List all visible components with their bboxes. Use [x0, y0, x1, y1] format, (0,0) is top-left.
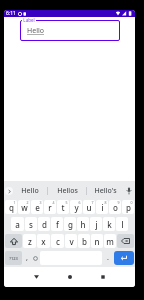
button[interactable]	[5, 234, 22, 248]
button[interactable]: Hello's	[87, 181, 124, 200]
button[interactable]: z	[23, 234, 36, 248]
button[interactable]: Hello	[13, 181, 47, 200]
staticText: ,	[26, 253, 28, 263]
button[interactable]: .	[103, 251, 113, 265]
staticText: z	[28, 236, 32, 247]
staticText: ?123	[9, 256, 18, 261]
button[interactable]: c	[51, 234, 64, 248]
staticText: q	[9, 202, 14, 213]
staticText: u	[86, 202, 92, 213]
button[interactable]: Hello	[20, 20, 120, 41]
staticText: m	[106, 236, 114, 247]
button[interactable]: e	[31, 200, 43, 214]
staticText: r	[48, 202, 52, 213]
button[interactable]: ?123	[5, 251, 22, 265]
staticText: g	[68, 219, 73, 230]
button[interactable]	[114, 251, 134, 265]
staticText: .	[107, 253, 109, 263]
button[interactable]: b	[78, 234, 90, 248]
button[interactable]: n	[91, 234, 103, 248]
button[interactable]: m	[104, 234, 116, 248]
button[interactable]: d	[38, 217, 50, 231]
button[interactable]: o	[109, 200, 121, 214]
staticText: i	[101, 202, 104, 213]
staticText: n	[94, 236, 100, 247]
staticText: j	[95, 219, 98, 230]
staticText: 3	[39, 200, 42, 205]
button[interactable]: l	[116, 217, 128, 231]
staticText: l	[121, 219, 124, 230]
staticText: d	[42, 219, 47, 230]
staticText: w	[21, 202, 28, 213]
button[interactable]: Hellos	[48, 181, 86, 200]
staticText: k	[107, 219, 112, 230]
staticText: s	[29, 219, 33, 230]
button[interactable]: u	[83, 200, 95, 214]
staticText: 6:11	[6, 10, 16, 17]
button[interactable]	[124, 181, 134, 200]
staticText: o	[113, 202, 118, 213]
staticText: e	[35, 202, 40, 213]
staticText: v	[69, 236, 74, 247]
staticText: h	[80, 219, 86, 230]
staticText: 4	[52, 200, 55, 205]
staticText: Hellos	[57, 186, 78, 196]
staticText: f	[56, 219, 59, 230]
staticText: Hello's	[94, 186, 117, 196]
staticText: b	[82, 236, 87, 247]
staticText: x	[41, 236, 46, 247]
staticText: 0	[130, 200, 133, 205]
button[interactable]: p	[122, 200, 134, 214]
button[interactable]: w	[18, 200, 30, 214]
button[interactable]: g	[64, 217, 76, 231]
staticText: Label	[23, 17, 35, 23]
button[interactable]: q	[5, 200, 17, 214]
button[interactable]: ,	[23, 251, 31, 265]
staticText: 7	[91, 200, 94, 205]
staticText: 6	[78, 200, 81, 205]
staticText: a	[15, 219, 20, 230]
button[interactable]: i	[96, 200, 108, 214]
staticText: y	[74, 202, 79, 213]
staticText: 2	[26, 200, 29, 205]
button[interactable]: t	[57, 200, 69, 214]
staticText: 9	[117, 200, 120, 205]
button[interactable]	[5, 187, 13, 195]
staticText: Hello	[27, 26, 44, 36]
button[interactable]: r	[44, 200, 56, 214]
button[interactable]	[117, 234, 134, 248]
button[interactable]	[86, 267, 119, 287]
staticText: p	[126, 202, 131, 213]
button[interactable]: y	[70, 200, 82, 214]
button[interactable]: x	[37, 234, 50, 248]
button[interactable]: k	[103, 217, 115, 231]
button[interactable]	[53, 267, 86, 287]
button[interactable]: s	[25, 217, 37, 231]
button[interactable]: f	[51, 217, 63, 231]
staticText: Hello	[21, 186, 39, 196]
button[interactable]: a	[11, 217, 24, 231]
button[interactable]: j	[90, 217, 102, 231]
button[interactable]: v	[65, 234, 77, 248]
button[interactable]: h	[77, 217, 89, 231]
staticText: 5	[65, 200, 68, 205]
staticText: t	[61, 202, 65, 213]
button[interactable]	[31, 251, 40, 265]
staticText: 1	[13, 200, 16, 205]
button[interactable]	[20, 267, 53, 287]
staticText: 8	[104, 200, 107, 205]
staticText: c	[56, 236, 60, 247]
